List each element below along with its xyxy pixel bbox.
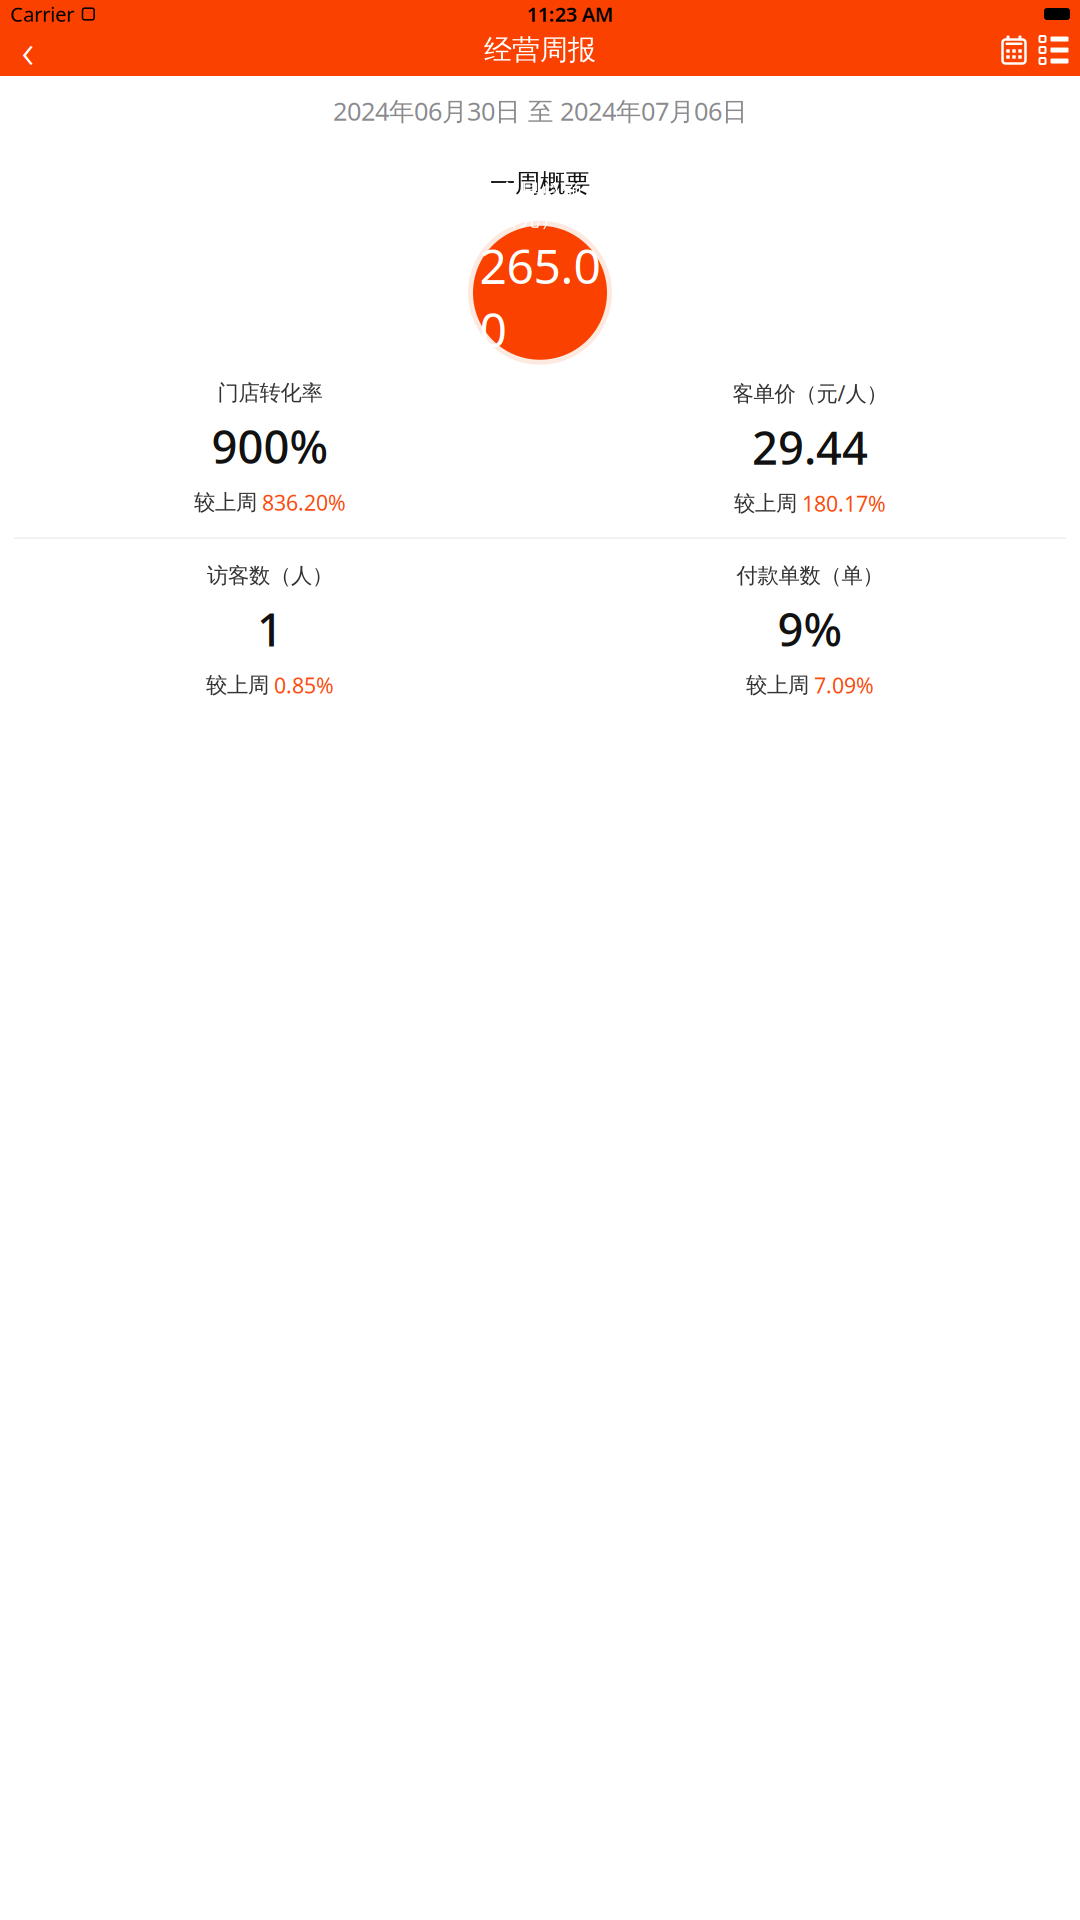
staticText: 访客数（人） <box>207 563 333 589</box>
staticText: 较上周 <box>206 672 269 698</box>
staticText: 2024年06月30日 至 2024年07月06日 <box>333 94 747 128</box>
staticText: 180.17% <box>802 489 886 518</box>
staticText: 客单价（元/人） <box>732 379 887 407</box>
staticText: 1 <box>257 599 283 659</box>
staticText: 265.00 <box>479 234 600 361</box>
staticText: 门店转化率 <box>217 380 322 406</box>
staticText: 一周概要 <box>490 168 590 199</box>
button[interactable]: Calendar <box>994 28 1034 72</box>
staticText: Carrier <box>10 1 74 27</box>
staticText: 较上周 <box>746 672 809 698</box>
staticText: 0.85% <box>274 671 334 699</box>
staticText: 较上周 <box>194 489 257 515</box>
staticText: 7.09% <box>814 671 874 699</box>
staticText: 经营周报 <box>484 33 596 67</box>
button[interactable]: Back <box>6 28 50 72</box>
staticText: 较上周 <box>734 490 797 517</box>
staticText: 11:23 AM <box>527 1 614 27</box>
staticText: 29.44 <box>752 417 868 477</box>
staticText: 9% <box>777 599 842 659</box>
staticText: ‹ <box>21 18 34 82</box>
staticText: 付款单数（单） <box>736 563 883 589</box>
button[interactable]: List <box>1034 28 1074 72</box>
staticText: 836.20% <box>262 488 346 516</box>
staticText: 交易总额（元） <box>498 179 582 231</box>
staticText: 900% <box>211 416 328 476</box>
